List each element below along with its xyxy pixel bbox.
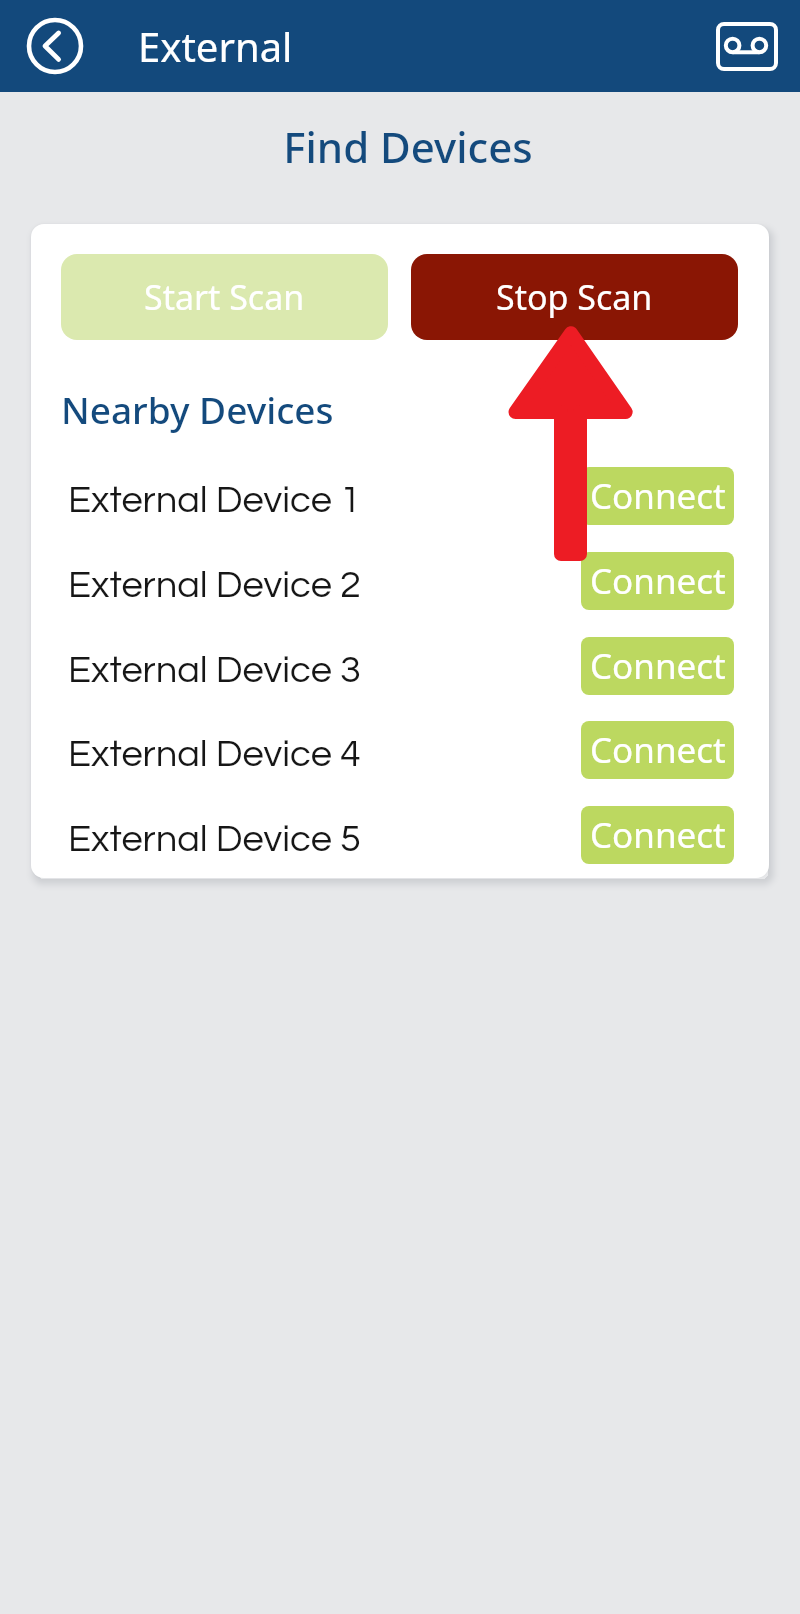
button[interactable]: External Device 3 [68, 628, 734, 713]
staticText: Stop Scan [496, 274, 653, 320]
button[interactable]: Stop Scan [411, 254, 738, 340]
button[interactable]: External Device 4 [68, 712, 734, 797]
button[interactable]: Voicemail [712, 11, 782, 81]
button[interactable]: Connect [581, 552, 734, 610]
staticText: Connect [590, 472, 726, 520]
staticText: External [138, 19, 293, 73]
staticText: External Device 5 [68, 820, 361, 859]
button[interactable]: External Device 1 [68, 458, 734, 543]
button[interactable]: Connect [581, 637, 734, 695]
staticText: External Device 3 [68, 651, 361, 690]
button[interactable]: External Device 5 [68, 797, 734, 878]
staticText: Nearby Devices [61, 384, 334, 434]
staticText: External Device 2 [68, 566, 361, 605]
staticText: Find Devices [283, 118, 533, 175]
button[interactable]: Start Scan [61, 254, 388, 340]
staticText: Start Scan [144, 274, 305, 320]
button[interactable]: Connect [581, 467, 734, 525]
staticText: External Device 4 [68, 735, 361, 774]
staticText: Connect [590, 726, 726, 774]
button[interactable]: Connect [581, 721, 734, 779]
staticText: External Device 1 [68, 481, 361, 520]
staticText: Connect [590, 557, 726, 605]
staticText: Connect [590, 811, 726, 859]
button[interactable]: Back [22, 13, 88, 79]
button[interactable]: External Device 2 [68, 543, 734, 628]
button[interactable]: Connect [581, 806, 734, 864]
staticText: Connect [590, 642, 726, 690]
